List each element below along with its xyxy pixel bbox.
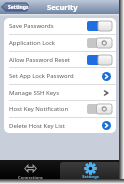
- button[interactable]: Delete Host Key List: [4, 118, 116, 133]
- staticText: Application Lock: [9, 39, 87, 47]
- button[interactable]: Settings: [60, 162, 120, 180]
- other: Connections: [24, 162, 37, 175]
- button[interactable]: Save Passwords: [4, 18, 116, 34]
- other: On: [87, 55, 112, 65]
- staticText: Manage SSH Keys: [9, 89, 103, 97]
- staticText: Allow Password Reset: [9, 56, 87, 64]
- button[interactable]: Manage SSH Keys: [4, 85, 116, 100]
- other: Off: [87, 104, 112, 114]
- button[interactable]: Allow Password Reset: [4, 52, 116, 67]
- staticText: Set App Lock Password: [9, 72, 102, 80]
- staticText: Settings: [82, 174, 99, 179]
- staticText: Security: [47, 2, 78, 12]
- button[interactable]: Connections: [0, 162, 60, 180]
- other: Settings: [85, 163, 96, 174]
- button[interactable]: Set App Lock Password: [4, 68, 116, 84]
- staticText: Delete Host Key List: [9, 122, 102, 130]
- staticText: Save Passwords: [9, 22, 87, 30]
- button[interactable]: Application Lock: [4, 35, 116, 51]
- button[interactable]: Host Key Notification: [4, 101, 116, 117]
- staticText: Settings: [8, 4, 29, 11]
- staticText: Connections: [18, 175, 43, 180]
- other: Off: [87, 38, 112, 48]
- button[interactable]: Settings: [1, 2, 29, 12]
- other: On: [87, 21, 112, 31]
- staticText: Host Key Notification: [9, 105, 87, 113]
